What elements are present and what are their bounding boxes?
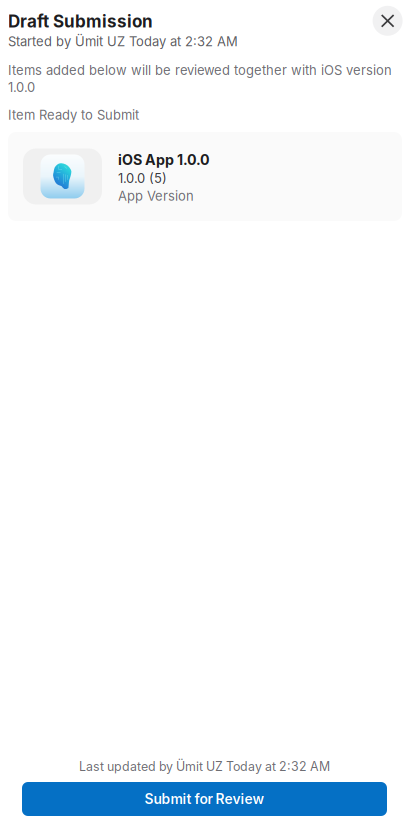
staticText: Draft Submission xyxy=(8,11,153,32)
staticText: Item Ready to Submit xyxy=(8,107,139,123)
staticText: Started by Ümit UZ Today at 2:32 AM xyxy=(8,34,238,49)
staticText: Submit for Review xyxy=(144,791,264,807)
staticText: 1.0.0 (5) xyxy=(118,170,167,186)
staticText: Last updated by Ümit UZ Today at 2:32 AM xyxy=(79,759,330,774)
staticText: iOS App 1.0.0 xyxy=(118,151,210,168)
staticText: Items added below will be reviewed toget… xyxy=(8,62,392,95)
staticText: App Version xyxy=(118,188,194,204)
button[interactable]: Submit for Review xyxy=(22,782,387,816)
button[interactable]: Close xyxy=(373,6,403,36)
